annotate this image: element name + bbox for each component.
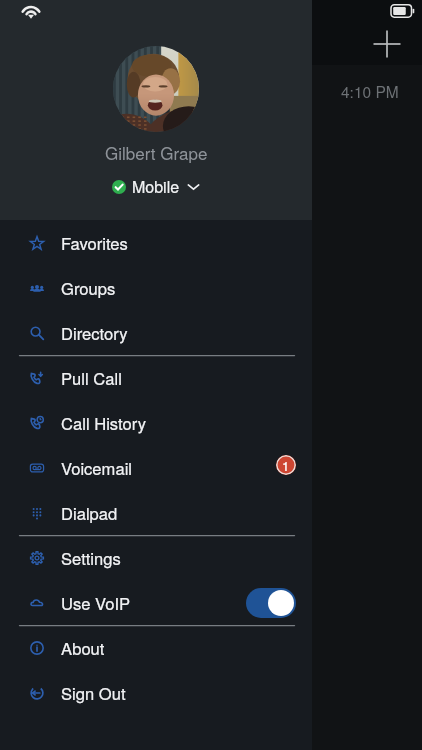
staticText: Pull Call [61,366,122,390]
button[interactable]: Directory [0,310,312,355]
staticText: Gilbert Grape [105,140,208,164]
staticText: Sign Out [61,681,126,705]
button[interactable]: Favorites [0,220,312,265]
button[interactable]: About [0,625,312,670]
button[interactable]: Settings [0,535,312,580]
button[interactable]: Call History [0,400,312,445]
button[interactable]: Use VoIP [0,580,312,625]
staticText: 4:10 PM [341,80,399,102]
button[interactable]: Pull Call [0,355,312,400]
button[interactable]: Voicemail [0,445,312,490]
staticText: About [61,636,105,660]
staticText: Directory [61,321,128,345]
button[interactable] [113,46,199,132]
staticText: Mobile [132,175,180,198]
button[interactable]: Add [363,20,411,68]
staticText: Favorites [61,231,128,255]
staticText: Settings [61,546,121,570]
staticText: Groups [61,276,116,300]
button[interactable]: Dialpad [0,490,312,535]
button[interactable]: Groups [0,265,312,310]
staticText: Dialpad [61,501,118,525]
button[interactable]: Use VoIP toggle [246,588,296,618]
staticText: Use VoIP [61,591,131,615]
staticText: Call History [61,411,146,435]
button[interactable]: Mobile [112,175,200,198]
staticText: Voicemail [61,456,133,480]
button[interactable]: Sign Out [0,670,312,715]
staticText: 1 [282,456,290,475]
